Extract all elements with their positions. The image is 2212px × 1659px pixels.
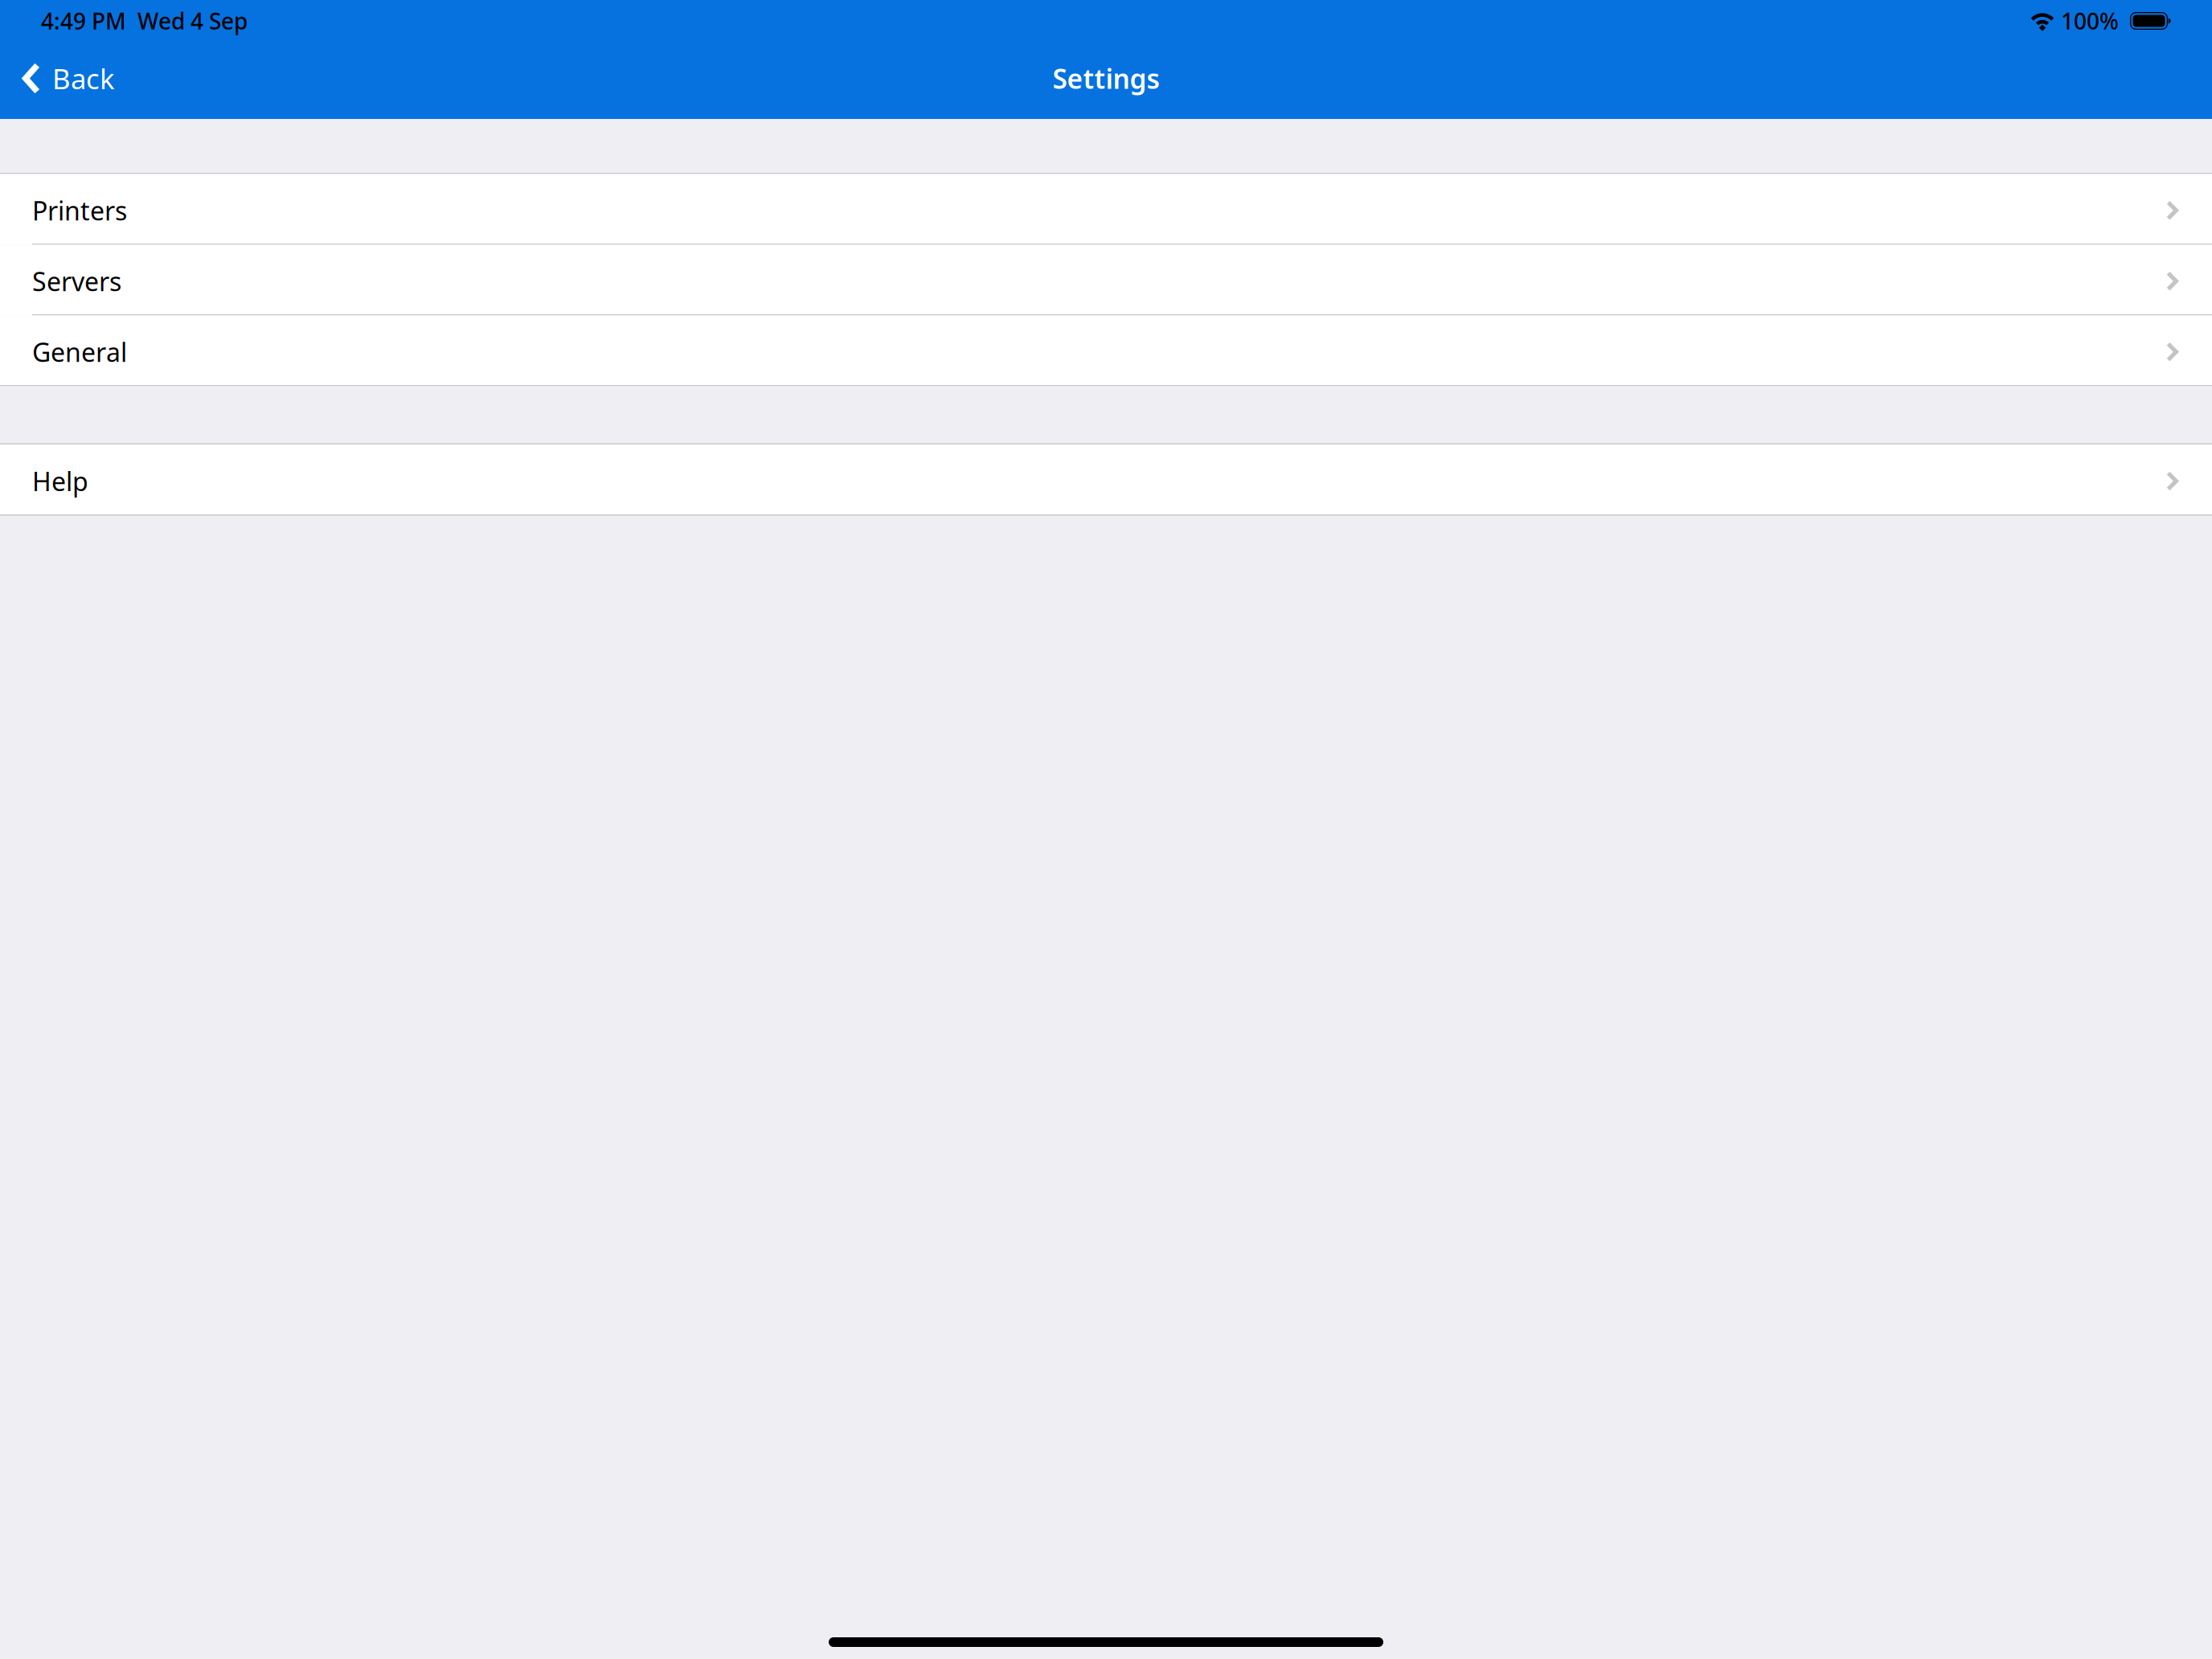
staticText: 100% <box>2061 6 2119 36</box>
staticText: Settings <box>1053 61 1159 96</box>
staticText: 4:49 PM <box>41 6 126 36</box>
staticText: Servers <box>32 264 121 298</box>
staticText: Printers <box>32 193 127 227</box>
button[interactable]: General <box>0 315 2212 385</box>
staticText: Back <box>52 60 115 97</box>
staticText: Wed 4 Sep <box>137 6 248 36</box>
staticText: General <box>32 335 127 369</box>
button[interactable]: Help <box>0 444 2212 514</box>
button[interactable]: Printers <box>0 174 2212 244</box>
button[interactable]: Servers <box>0 245 2212 314</box>
staticText: Help <box>32 464 88 498</box>
button[interactable]: Back <box>0 40 131 117</box>
